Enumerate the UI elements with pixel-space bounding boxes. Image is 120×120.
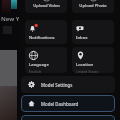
staticText: Inbox (76, 35, 88, 41)
other: Notifications (29, 24, 38, 33)
staticText: Model Dashboard (41, 101, 79, 107)
button[interactable]: Location (72, 47, 114, 73)
staticText: Location (76, 62, 94, 68)
other: Upload Video (42, 0, 51, 1)
staticText: Upload Video (33, 3, 60, 9)
staticText: United States (76, 69, 99, 73)
button[interactable]: Inbox (72, 20, 114, 44)
staticText: Model Settings (41, 82, 73, 88)
other: Inbox (76, 24, 85, 33)
button[interactable]: Language (25, 47, 67, 73)
button[interactable]: Notifications (25, 20, 67, 44)
staticText: New Y (1, 15, 20, 23)
staticText: Upload Photo (79, 3, 107, 9)
other: Upload Photo (89, 0, 98, 1)
staticText: Notifications (29, 35, 55, 41)
other: Model Dashboard (28, 100, 35, 107)
button[interactable]: Model Dashboard (21, 95, 115, 112)
other: Model Settings (28, 81, 35, 88)
staticText: Language (29, 62, 49, 68)
button[interactable]: Upload Video (25, 0, 67, 13)
button[interactable]: Upload Photo (72, 0, 114, 13)
button[interactable]: Model Reports (21, 115, 115, 120)
button[interactable]: Model Settings (21, 76, 115, 93)
staticText: English (29, 69, 42, 73)
other: Location (76, 51, 85, 60)
other: Language (29, 51, 38, 60)
